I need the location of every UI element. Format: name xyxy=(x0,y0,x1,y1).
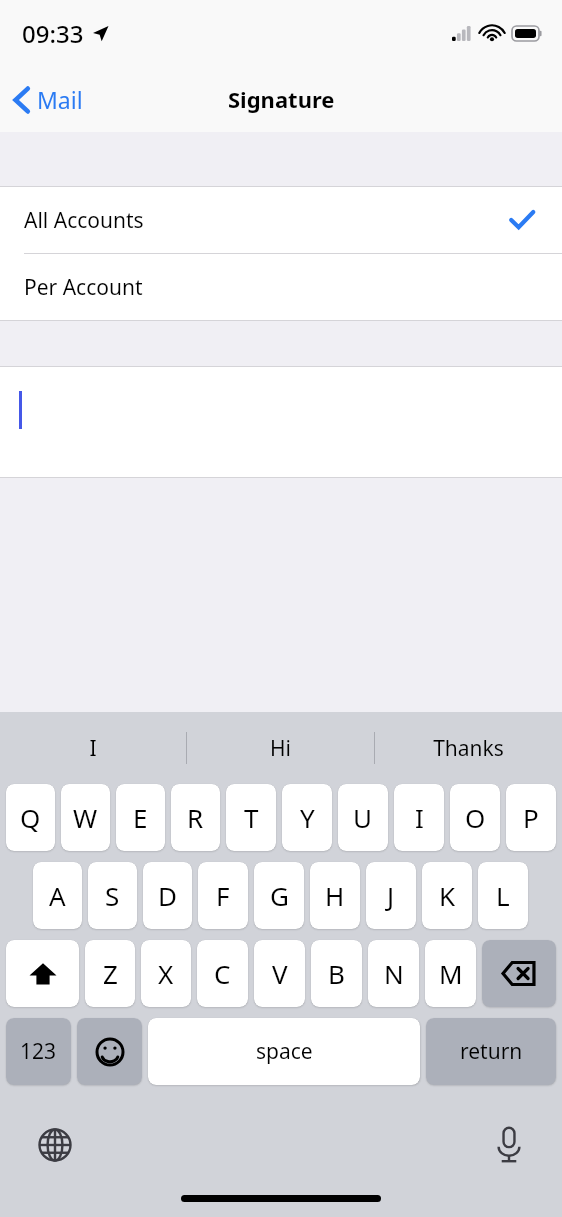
staticText: K xyxy=(439,878,456,913)
staticText: R xyxy=(187,800,204,835)
button[interactable]: O xyxy=(450,784,500,851)
button[interactable]: G xyxy=(254,862,304,929)
button[interactable]: I xyxy=(0,712,186,784)
button[interactable]: S xyxy=(88,862,137,929)
staticText: P xyxy=(523,800,539,835)
button[interactable]: W xyxy=(61,784,110,851)
button[interactable]: B xyxy=(311,940,362,1007)
staticText: Hi xyxy=(270,734,291,763)
button[interactable]: I xyxy=(394,784,444,851)
staticText: space xyxy=(256,1037,313,1066)
button[interactable]: M xyxy=(425,940,476,1007)
staticText: T xyxy=(244,800,259,835)
staticText: Mail xyxy=(37,84,83,115)
button[interactable]: C xyxy=(197,940,248,1007)
staticText: return xyxy=(460,1037,523,1066)
staticText: C xyxy=(214,956,231,991)
staticText: I xyxy=(89,734,97,763)
staticText: G xyxy=(270,878,289,913)
staticText: J xyxy=(387,878,395,913)
button[interactable]: F xyxy=(198,862,248,929)
staticText: M xyxy=(439,956,463,991)
button[interactable]: Mail xyxy=(0,76,95,123)
button[interactable]: Per Account xyxy=(0,254,562,320)
button[interactable]: Backspace xyxy=(482,940,556,1007)
staticText: L xyxy=(496,878,510,913)
button[interactable]: Y xyxy=(282,784,332,851)
staticText: D xyxy=(158,878,177,913)
staticText: Signature xyxy=(228,84,335,114)
staticText: Thanks xyxy=(433,734,504,763)
button[interactable]: Change keyboard language xyxy=(30,1120,80,1170)
staticText: B xyxy=(328,956,345,991)
staticText: W xyxy=(73,800,98,835)
staticText: All Accounts xyxy=(24,206,144,235)
button[interactable]: V xyxy=(254,940,305,1007)
button[interactable]: return xyxy=(426,1018,556,1085)
staticText: A xyxy=(49,878,66,913)
button[interactable]: E xyxy=(116,784,165,851)
staticText: 09:33 xyxy=(22,17,84,50)
staticText: 123 xyxy=(20,1037,57,1066)
button[interactable]: A xyxy=(33,862,82,929)
staticText: V xyxy=(272,956,288,991)
button[interactable]: N xyxy=(368,940,419,1007)
staticText: Y xyxy=(300,800,315,835)
staticText: H xyxy=(325,878,345,913)
button[interactable]: Thanks xyxy=(375,712,562,784)
staticText: Z xyxy=(103,956,118,991)
staticText: Q xyxy=(20,800,41,835)
button[interactable]: Emoji xyxy=(77,1018,142,1085)
button[interactable]: space xyxy=(148,1018,420,1085)
button[interactable]: P xyxy=(506,784,556,851)
button[interactable]: H xyxy=(310,862,360,929)
button[interactable]: Z xyxy=(85,940,135,1007)
button[interactable]: 123 xyxy=(6,1018,71,1085)
button[interactable]: Dictate xyxy=(488,1119,530,1171)
button[interactable]: L xyxy=(478,862,528,929)
button[interactable]: R xyxy=(171,784,220,851)
button[interactable]: Q xyxy=(6,784,55,851)
staticText: E xyxy=(133,800,148,835)
button[interactable]: Hi xyxy=(187,712,374,784)
staticText: I xyxy=(415,800,424,835)
button[interactable]: K xyxy=(422,862,472,929)
staticText: F xyxy=(216,878,230,913)
button[interactable]: X xyxy=(141,940,191,1007)
staticText: U xyxy=(353,800,373,835)
staticText: X xyxy=(158,956,174,991)
button[interactable]: T xyxy=(226,784,276,851)
staticText: O xyxy=(465,800,486,835)
button[interactable] xyxy=(0,367,562,477)
staticText: S xyxy=(105,878,120,913)
button[interactable]: D xyxy=(143,862,192,929)
staticText: N xyxy=(384,956,404,991)
button[interactable]: U xyxy=(338,784,388,851)
button[interactable]: J xyxy=(366,862,416,929)
button[interactable]: Shift xyxy=(6,940,79,1007)
staticText: Per Account xyxy=(24,273,143,302)
button[interactable]: All Accounts xyxy=(0,187,562,253)
